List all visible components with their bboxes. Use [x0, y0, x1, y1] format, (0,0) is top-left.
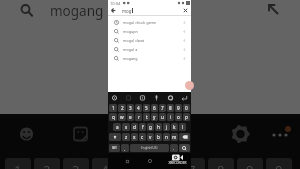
button[interactable]: English(US) — [130, 144, 169, 152]
button[interactable]: mogul clwat — [114, 36, 187, 45]
staticText: p — [185, 114, 188, 120]
button[interactable]: , — [121, 144, 129, 152]
button[interactable]: Settings — [230, 124, 251, 145]
staticText: !#1 — [112, 146, 117, 150]
button[interactable]: Search — [179, 144, 190, 152]
staticText: 3 — [129, 105, 132, 111]
button[interactable]: o — [175, 113, 182, 121]
button[interactable]: d — [131, 123, 138, 131]
button[interactable]: s — [122, 123, 130, 131]
button[interactable]: w — [118, 113, 126, 121]
staticText: 7 — [161, 105, 164, 111]
button[interactable]: 3 — [127, 104, 134, 112]
button[interactable]: 3 — [63, 158, 89, 169]
button[interactable]: k — [171, 123, 178, 131]
button[interactable]: 4 — [135, 104, 142, 112]
button[interactable]: y — [151, 113, 158, 121]
button[interactable]: Keyboard tool — [152, 93, 161, 102]
button[interactable]: 0 — [266, 158, 292, 169]
button[interactable]: v — [147, 133, 154, 141]
button[interactable]: Home — [146, 157, 154, 165]
button[interactable]: r — [135, 113, 142, 121]
staticText: 0 — [185, 105, 188, 111]
button[interactable]: x — [131, 133, 138, 141]
button[interactable]: q — [109, 113, 117, 121]
button[interactable]: 5 — [143, 104, 150, 112]
button[interactable]: !#1 — [109, 144, 120, 152]
button[interactable]: Emoji — [16, 124, 37, 145]
button[interactable]: 1 — [5, 158, 31, 169]
button[interactable]: 2 — [118, 104, 126, 112]
button[interactable]: m — [171, 133, 178, 141]
button[interactable]: 6 — [150, 158, 176, 169]
button[interactable]: Stickers — [70, 124, 91, 145]
button[interactable]: Keyboard tool — [124, 93, 133, 102]
staticText: m — [172, 134, 177, 140]
staticText: 9 — [246, 161, 254, 169]
button[interactable]: 9 — [237, 158, 263, 169]
button[interactable]: p — [183, 113, 190, 121]
staticText: b — [157, 134, 160, 140]
button[interactable]: f — [139, 123, 146, 131]
button[interactable]: 5 — [121, 158, 147, 169]
staticText: 4 — [101, 161, 109, 169]
button[interactable]: z — [122, 133, 130, 141]
staticText: l — [182, 124, 184, 130]
button[interactable]: mogul chuck game — [114, 18, 187, 27]
button[interactable]: c — [139, 133, 146, 141]
button[interactable]: . — [170, 144, 178, 152]
button[interactable]: Keyboard tool — [180, 93, 189, 102]
button[interactable]: j — [163, 123, 170, 131]
button[interactable]: n — [163, 133, 170, 141]
button[interactable]: u — [159, 113, 166, 121]
button[interactable]: mogupn — [114, 27, 187, 36]
button[interactable]: Search — [14, 0, 38, 24]
staticText: x — [133, 134, 136, 140]
staticText: 2 — [43, 161, 51, 169]
button[interactable]: h — [155, 123, 162, 131]
button[interactable]: 6 — [151, 104, 158, 112]
button[interactable]: 2 — [34, 158, 60, 169]
button[interactable]: mogang — [114, 54, 187, 63]
button[interactable]: 7 — [179, 158, 205, 169]
button[interactable]: i — [167, 113, 174, 121]
button[interactable]: Keyboard tool — [166, 93, 175, 102]
button[interactable]: Expand — [264, 0, 284, 20]
staticText: i — [170, 114, 172, 120]
button[interactable]: a — [113, 123, 121, 131]
button[interactable]: 0 — [183, 104, 190, 112]
staticText: v — [149, 134, 152, 140]
button[interactable]: 7 — [159, 104, 166, 112]
staticText: s — [125, 124, 128, 130]
button[interactable]: Recents — [123, 157, 131, 165]
button[interactable]: Back — [168, 157, 176, 165]
button[interactable]: 9 — [175, 104, 182, 112]
button[interactable]: Keyboard tool — [138, 93, 147, 102]
button[interactable]: Backspace — [179, 133, 190, 141]
staticText: g — [149, 124, 152, 130]
staticText: mogang — [123, 56, 138, 61]
button[interactable]: Compose — [185, 81, 194, 90]
button[interactable]: l — [179, 123, 186, 131]
button[interactable]: Keyboard tool — [110, 93, 119, 102]
staticText: 8 — [169, 105, 172, 111]
staticText: q — [112, 114, 115, 120]
staticText: j — [166, 124, 168, 130]
button[interactable]: 4 — [92, 158, 118, 169]
button[interactable]: g — [147, 123, 154, 131]
button[interactable]: mogul a — [114, 45, 187, 54]
staticText: 8 — [217, 161, 225, 169]
button[interactable]: Shift — [109, 133, 121, 141]
button[interactable]: 1 — [109, 104, 117, 112]
button[interactable]: t — [143, 113, 150, 121]
button[interactable]: 8 — [167, 104, 174, 112]
button[interactable]: e — [127, 113, 134, 121]
button[interactable]: b — [155, 133, 162, 141]
button[interactable]: More options — [266, 124, 294, 145]
button[interactable]: 8 — [208, 158, 234, 169]
staticText: 1 — [14, 161, 22, 169]
staticText: 4 — [137, 105, 140, 111]
staticText: e — [129, 114, 132, 120]
staticText: w — [120, 114, 124, 120]
